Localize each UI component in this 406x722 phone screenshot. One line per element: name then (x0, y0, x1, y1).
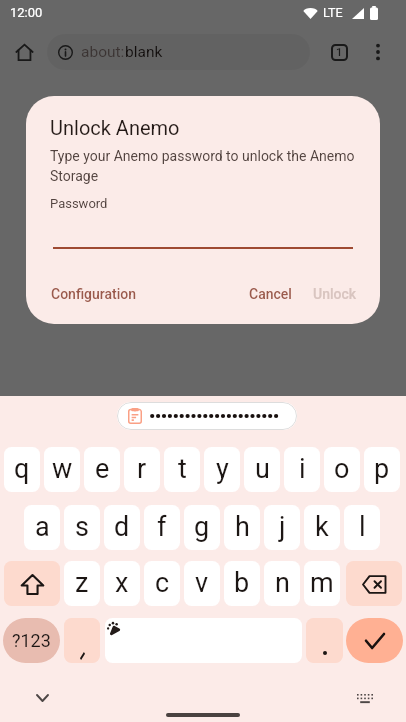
staticText: t (178, 453, 187, 485)
staticText: 1 (336, 46, 343, 59)
button[interactable]: ?123 (3, 618, 60, 663)
button[interactable]: Cancel (239, 276, 302, 312)
button[interactable]: o (324, 447, 360, 492)
staticText: j (279, 511, 286, 543)
staticText: b (234, 567, 250, 599)
button[interactable]: t (164, 447, 200, 492)
staticText: f (157, 511, 167, 543)
button[interactable]: r (124, 447, 160, 492)
staticText: w (52, 453, 73, 485)
staticText: v (195, 567, 209, 599)
staticText: 12:00 (10, 5, 43, 20)
staticText: r (137, 453, 147, 485)
staticText: z (75, 567, 89, 599)
button[interactable]: g (184, 505, 220, 550)
staticText: about: (81, 43, 125, 61)
button[interactable]: b (224, 561, 260, 606)
staticText: LTE (323, 5, 343, 20)
staticText: s (75, 511, 89, 543)
button[interactable]: n (264, 561, 300, 606)
button[interactable]: i (284, 447, 320, 492)
staticText: p (374, 453, 390, 485)
staticText: n (275, 567, 290, 599)
staticText: m (310, 567, 334, 599)
button[interactable]: z (64, 561, 100, 606)
button[interactable]: More options (362, 36, 394, 68)
staticText: k (315, 511, 329, 543)
staticText: Unlock Anemo (50, 116, 180, 139)
staticText: x (115, 567, 129, 599)
button[interactable]: u (244, 447, 280, 492)
button[interactable]: Enter (346, 618, 403, 663)
button[interactable]: p (364, 447, 400, 492)
button[interactable]: Backspace (346, 561, 402, 606)
button[interactable]: l (344, 505, 380, 550)
button[interactable]: f (144, 505, 180, 550)
staticText: u (255, 453, 270, 485)
button[interactable]: Home (8, 36, 40, 68)
button[interactable]: Tabs (323, 36, 355, 68)
staticText: o (334, 453, 350, 485)
button[interactable]: m (304, 561, 340, 606)
button[interactable]: Change keyboard (349, 683, 381, 715)
button[interactable]: about: (47, 34, 310, 70)
button[interactable]: a (24, 505, 60, 550)
button[interactable] (306, 618, 343, 663)
staticText: h (235, 511, 250, 543)
staticText: l (359, 511, 366, 543)
staticText: q (14, 453, 30, 485)
button[interactable]: q (4, 447, 40, 492)
staticText: i (299, 453, 306, 485)
staticText: y (216, 453, 229, 485)
staticText: e (95, 453, 110, 485)
staticText: c (155, 567, 170, 599)
staticText: g (194, 511, 210, 543)
button[interactable] (117, 402, 297, 430)
button[interactable]: Unlock (303, 276, 367, 312)
staticText: Configuration (51, 286, 136, 302)
staticText: ?123 (12, 630, 51, 651)
button[interactable]: d (104, 505, 140, 550)
button[interactable]: x (104, 561, 140, 606)
button[interactable]: y (204, 447, 240, 492)
staticText: a (35, 511, 50, 543)
button[interactable] (64, 618, 100, 663)
button[interactable]: w (44, 447, 80, 492)
staticText: Cancel (249, 286, 292, 302)
button[interactable]: v (184, 561, 220, 606)
button[interactable]: h (224, 505, 260, 550)
button[interactable]: k (304, 505, 340, 550)
button[interactable]: j (264, 505, 300, 550)
button[interactable]: Space (105, 618, 302, 663)
staticText: blank (125, 43, 163, 61)
staticText: Type your Anemo password to unlock the A… (50, 148, 362, 184)
staticText: d (114, 511, 130, 543)
button[interactable]: Shift (4, 561, 60, 606)
button[interactable]: Configuration (41, 276, 146, 312)
button[interactable]: Hide keyboard (26, 682, 58, 714)
button[interactable]: e (84, 447, 120, 492)
staticText: Unlock (313, 286, 357, 302)
button[interactable]: c (144, 561, 180, 606)
staticText: Password (50, 196, 108, 211)
button[interactable]: s (64, 505, 100, 550)
